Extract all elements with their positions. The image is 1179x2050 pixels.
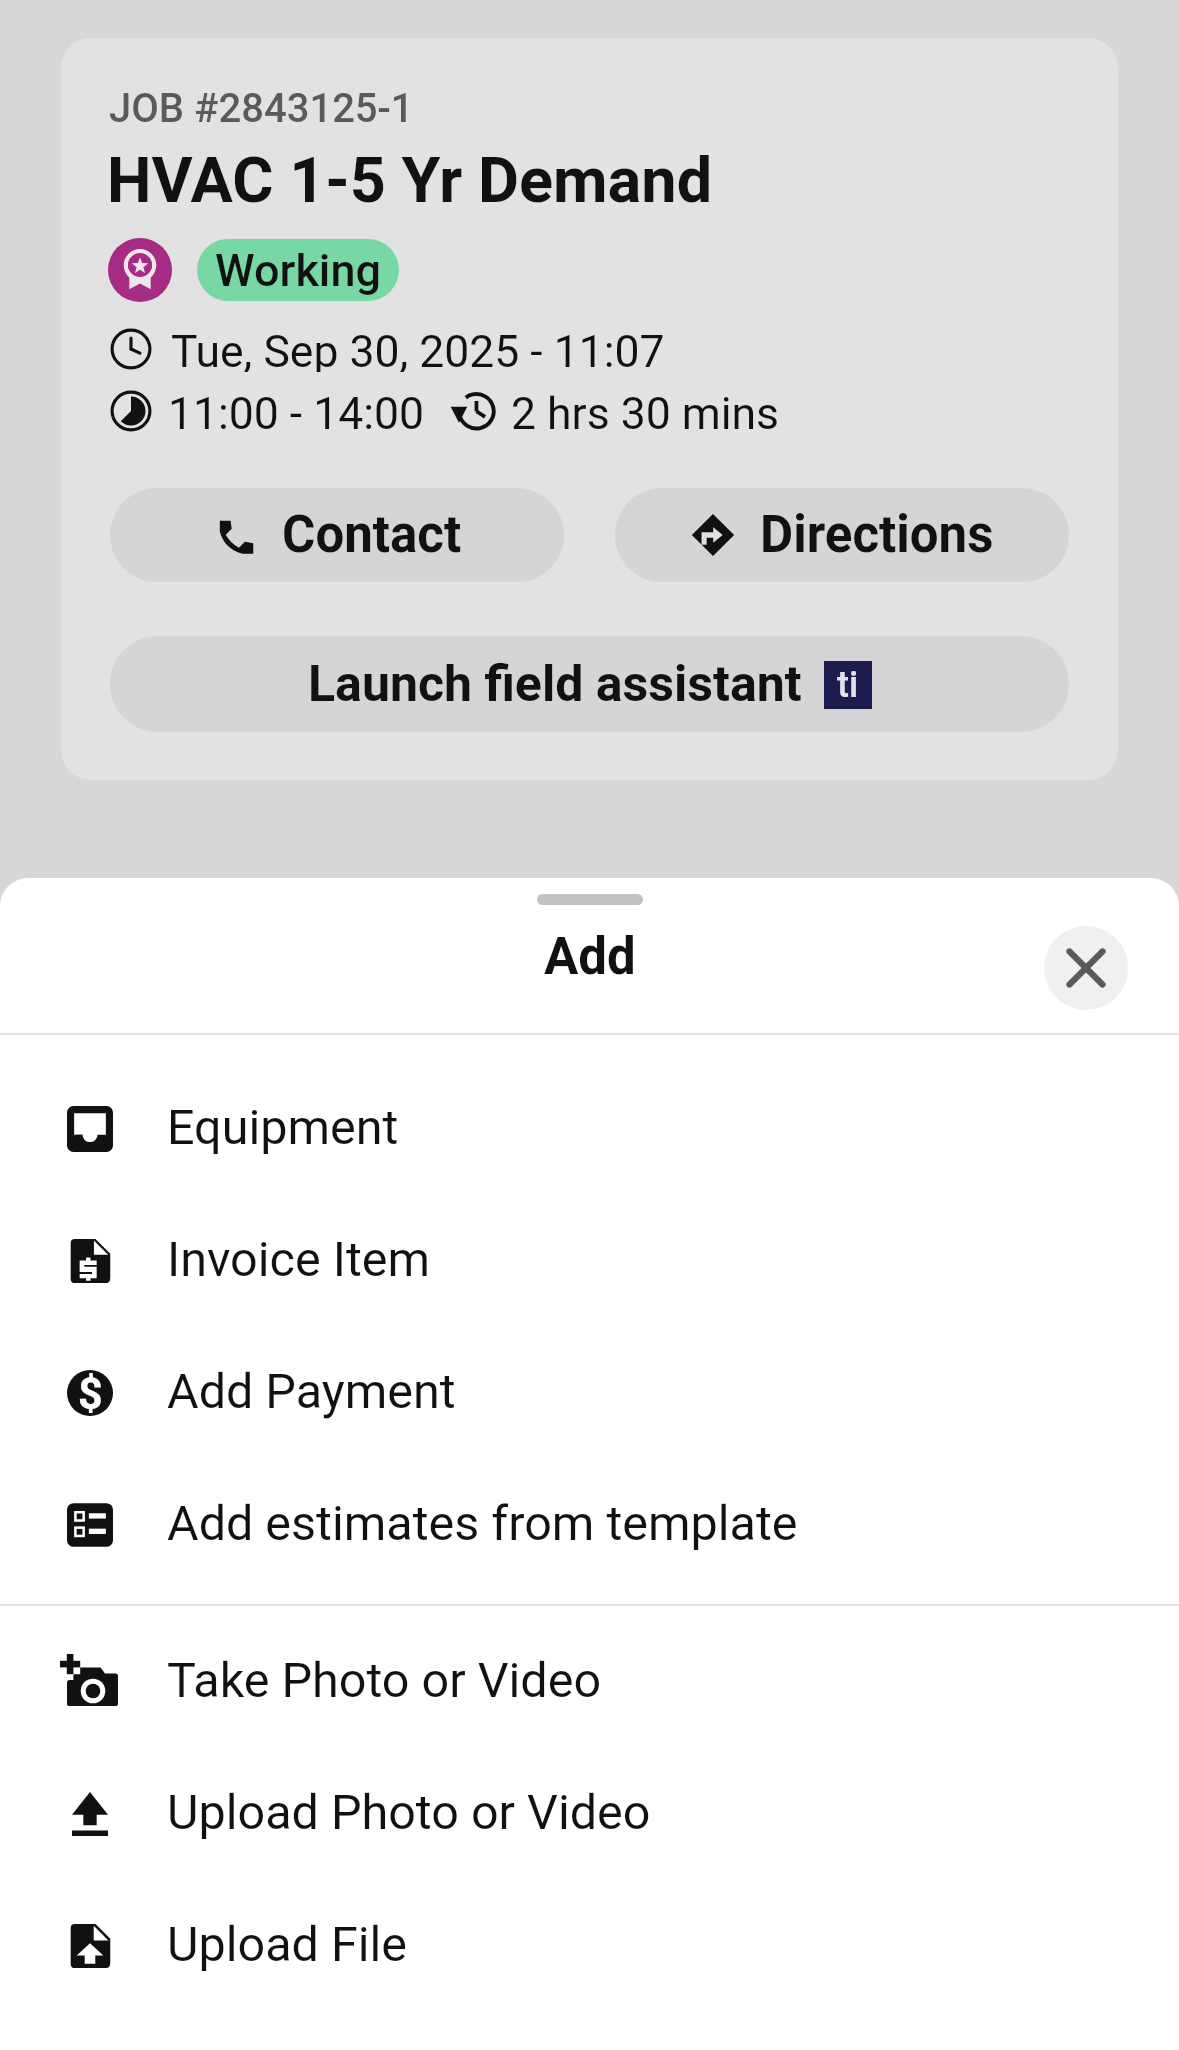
button[interactable]: Directions	[615, 488, 1069, 582]
staticText: 11:00 - 14:00	[168, 388, 425, 434]
staticText: Take Photo or Video	[167, 1652, 602, 1709]
button[interactable]: Add estimates from template	[0, 1460, 1179, 1592]
staticText: Directions	[760, 505, 994, 565]
staticText: Launch field assistant	[308, 655, 802, 714]
button[interactable]: Drag handle	[0, 894, 1179, 905]
staticText: Contact	[282, 505, 462, 565]
staticText: ti	[837, 664, 859, 706]
staticText: Add Payment	[167, 1363, 456, 1420]
staticText: Equipment	[167, 1099, 399, 1156]
staticText: Upload File	[167, 1916, 408, 1973]
button[interactable]: Take Photo or Video	[0, 1617, 1179, 1749]
staticText: Working	[215, 244, 381, 297]
staticText: HVAC 1-5 Yr Demand	[107, 144, 713, 218]
button[interactable]: Equipment	[0, 1064, 1179, 1196]
button[interactable]: Launch field assistant	[110, 636, 1069, 732]
button[interactable]: Upload File	[0, 1881, 1179, 2013]
staticText: $	[78, 1369, 103, 1415]
staticText: Add estimates from template	[167, 1495, 798, 1552]
button[interactable]: $	[0, 1328, 1179, 1460]
button[interactable]: Contact	[110, 488, 564, 582]
button[interactable]: Close	[1044, 926, 1128, 1010]
staticText: Upload Photo or Video	[167, 1784, 651, 1841]
button[interactable]: JOB #2843125-1	[61, 38, 1118, 780]
staticText: Invoice Item	[167, 1231, 431, 1288]
staticText: Tue, Sep 30, 2025 - 11:07	[171, 326, 665, 372]
button[interactable]: Upload Photo or Video	[0, 1749, 1179, 1881]
staticText: JOB #2843125-1	[109, 85, 414, 132]
button[interactable]: Invoice Item	[0, 1196, 1179, 1328]
staticText: Add	[544, 927, 636, 987]
staticText: 2 hrs 30 mins	[511, 388, 780, 434]
